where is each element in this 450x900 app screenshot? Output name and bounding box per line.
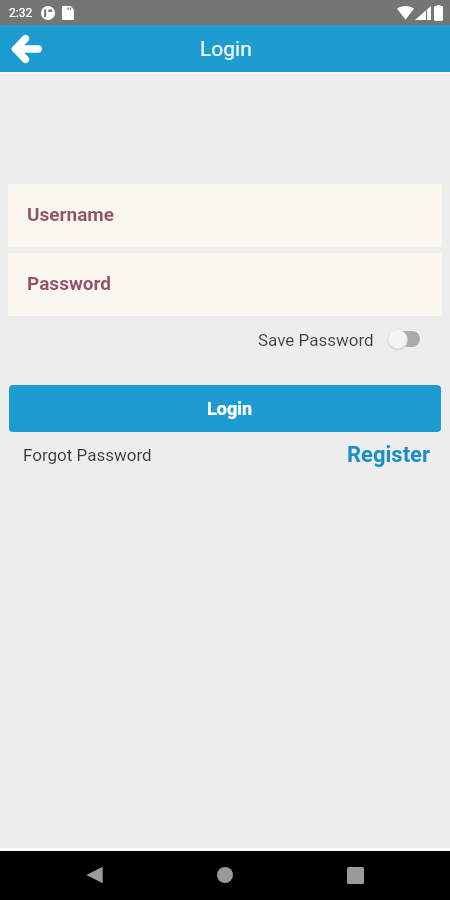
staticText: Login [200,37,252,62]
button[interactable]: Login [9,385,441,432]
staticText: 2:32 [9,6,33,20]
button[interactable]: Back [72,853,116,897]
button[interactable]: Forgot Password [23,445,152,465]
staticText: Password [27,272,112,294]
staticText: Register [347,442,431,468]
button[interactable]: Home [203,853,247,897]
staticText: Save Password [258,330,374,350]
staticText: Login [207,398,253,419]
button[interactable]: Recents [333,853,377,897]
button[interactable]: Back [7,31,43,67]
button[interactable]: Password [8,253,442,316]
staticText: Forgot Password [23,445,152,465]
button[interactable]: Save Password [258,330,374,350]
button[interactable]: Save Password toggle [389,326,423,352]
button[interactable]: Username [8,184,442,247]
staticText: Username [27,203,115,225]
button[interactable]: Register [347,442,431,468]
